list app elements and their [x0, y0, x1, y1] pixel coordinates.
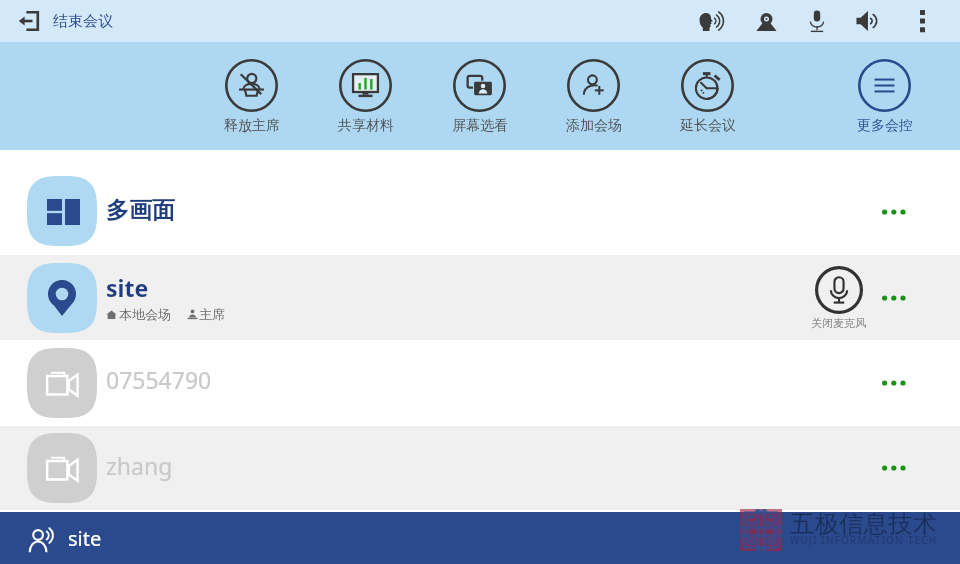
button[interactable]: More	[870, 274, 918, 322]
staticText: 主席	[199, 306, 225, 322]
button[interactable]: More	[870, 444, 918, 492]
staticText: zhang	[106, 450, 173, 481]
button[interactable]: Speaking	[688, 0, 736, 42]
button[interactable]: 07554790	[0, 340, 960, 426]
button[interactable]: 释放主席	[215, 59, 288, 135]
button[interactable]: 关闭麦克风	[811, 266, 866, 330]
staticText: 本地会场	[119, 306, 171, 322]
staticText: 五极信息技术	[790, 509, 937, 539]
button[interactable]: site	[0, 255, 960, 340]
button[interactable]: 结束会议	[0, 4, 129, 38]
staticText: 关闭麦克风	[811, 316, 866, 330]
button[interactable]: 添加会场	[557, 59, 630, 135]
button[interactable]: 更多会控	[848, 59, 921, 135]
button[interactable]: Camera	[742, 0, 790, 42]
button[interactable]: 多画面	[0, 150, 960, 255]
staticText: site	[68, 525, 102, 552]
staticText: WUJI INFORMATION TECH	[790, 533, 938, 547]
staticText: 添加会场	[566, 117, 622, 135]
button[interactable]: More	[870, 359, 918, 407]
button[interactable]: More	[870, 188, 918, 236]
button[interactable]: 延长会议	[671, 59, 744, 135]
button[interactable]: zhang	[0, 426, 960, 510]
button[interactable]: site	[0, 512, 960, 564]
staticText: 结束会议	[53, 12, 113, 31]
button[interactable]: Speaker	[843, 0, 891, 42]
button[interactable]: 共享材料	[329, 59, 402, 135]
staticText: 更多会控	[857, 117, 913, 135]
staticText: 共享材料	[338, 117, 394, 135]
staticText: 延长会议	[680, 117, 736, 135]
staticText: 07554790	[106, 364, 212, 395]
button[interactable]: Microphone	[793, 0, 841, 42]
button[interactable]: 屏幕选看	[443, 59, 516, 135]
staticText: site	[106, 272, 149, 303]
button[interactable]: More options	[898, 0, 946, 42]
staticText: 屏幕选看	[452, 117, 508, 135]
staticText: 释放主席	[224, 117, 280, 135]
staticText: 多画面	[106, 196, 175, 225]
